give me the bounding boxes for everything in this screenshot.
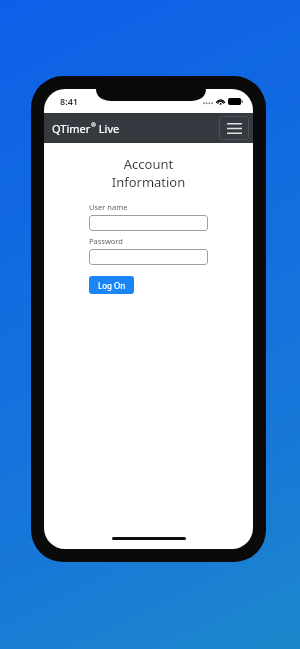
staticText: Password — [89, 236, 123, 246]
staticText: ® — [91, 121, 96, 129]
staticText: Live — [96, 121, 120, 136]
button[interactable]: Menu — [219, 116, 249, 140]
staticText: QTimer — [52, 121, 91, 136]
staticText: 8:41 — [60, 95, 78, 107]
button[interactable]: Log On — [89, 276, 134, 294]
button[interactable]: Text field — [89, 249, 208, 265]
staticText: User name — [89, 202, 128, 212]
staticText: Account Information — [89, 155, 208, 191]
staticText: Log On — [98, 280, 126, 291]
button[interactable]: Text field — [89, 215, 208, 231]
